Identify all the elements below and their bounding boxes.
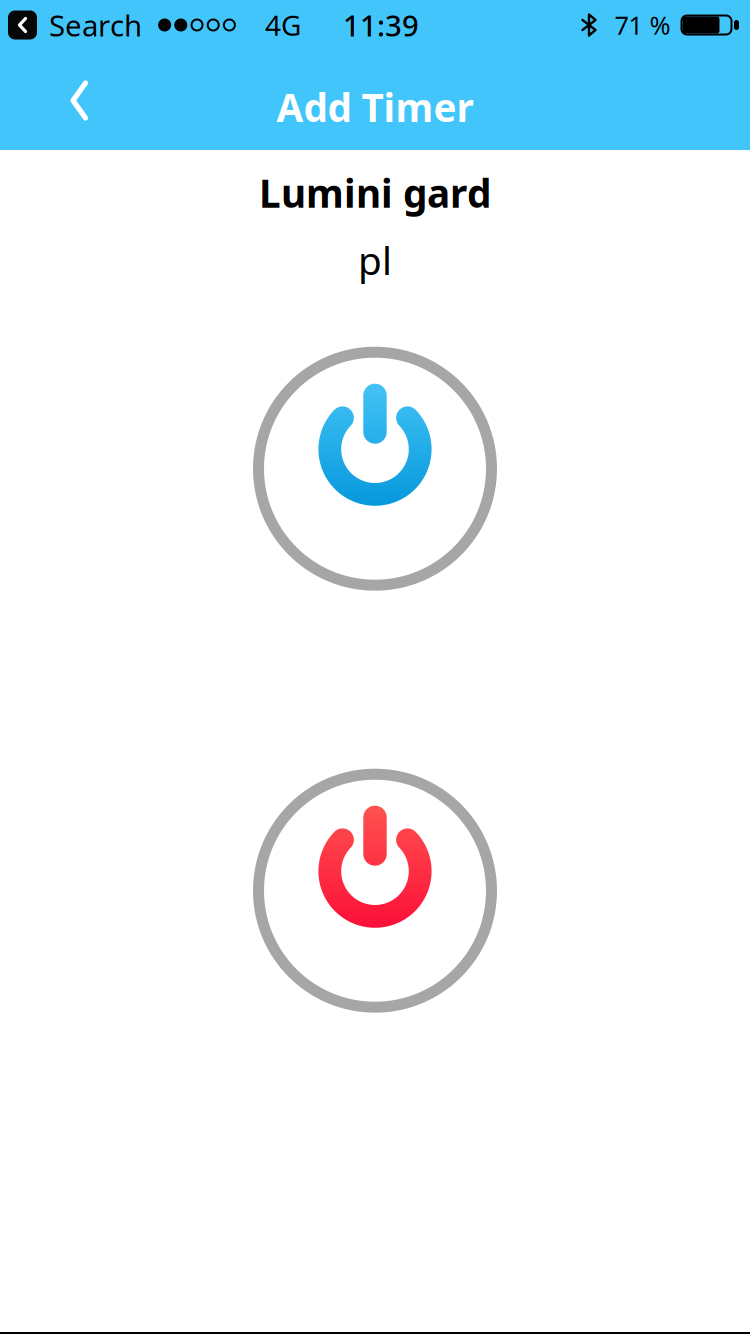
staticText: Add Timer: [276, 81, 473, 133]
staticText: 71 %: [614, 8, 670, 42]
staticText: 4G: [265, 6, 301, 44]
staticText: Search: [49, 5, 142, 44]
staticText: Lumini gard: [259, 167, 491, 218]
button[interactable]: Turn off: [253, 769, 497, 1013]
button[interactable]: Turn on: [253, 347, 497, 591]
staticText: 11:39: [343, 5, 419, 44]
staticText: pl: [358, 234, 392, 286]
button[interactable]: Back to Search: [8, 10, 37, 39]
button[interactable]: Back: [0, 49, 114, 149]
